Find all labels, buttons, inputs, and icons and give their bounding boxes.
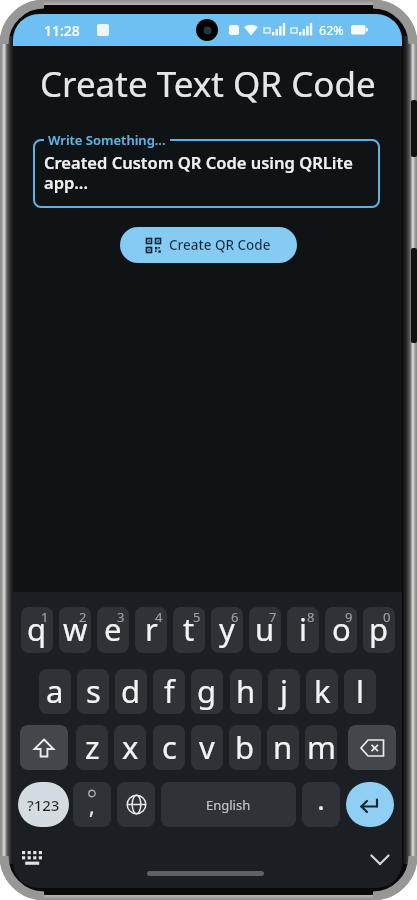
staticText: i [299, 608, 307, 650]
button[interactable]: . [302, 782, 340, 827]
staticText: o [332, 608, 351, 650]
button[interactable]: , [73, 782, 111, 827]
staticText: p [369, 608, 389, 650]
button[interactable] [365, 846, 395, 874]
staticText: u [255, 608, 275, 650]
staticText: 5 [193, 608, 201, 626]
button[interactable]: y [211, 607, 243, 653]
staticText: k [314, 670, 331, 712]
button[interactable]: s [77, 669, 109, 714]
staticText: t [183, 608, 195, 650]
staticText: c [162, 726, 177, 768]
button[interactable] [20, 725, 68, 770]
button[interactable]: k [306, 669, 338, 714]
staticText: v [199, 726, 215, 768]
staticText: 3 [117, 608, 125, 626]
staticText: x [122, 726, 139, 768]
button[interactable] [17, 845, 48, 873]
button[interactable]: ?123 [18, 782, 69, 827]
staticText: q [27, 608, 47, 650]
staticText: Write Something... [48, 131, 166, 149]
staticText: Created Custom QR Code using QRLite [44, 151, 353, 173]
button[interactable]: English [161, 782, 296, 827]
staticText: 1 [41, 608, 49, 626]
staticText: r [145, 608, 158, 650]
button[interactable] [117, 782, 155, 827]
button[interactable]: f [153, 669, 185, 714]
button[interactable]: a [39, 669, 71, 714]
staticText: . [318, 788, 324, 817]
button[interactable]: g [191, 669, 223, 714]
button[interactable] [348, 725, 396, 770]
staticText: g [197, 670, 217, 712]
staticText: n [273, 726, 293, 768]
staticText: 62% [319, 22, 344, 39]
staticText: Create Text QR Code [40, 60, 376, 108]
button[interactable]: m [305, 725, 337, 770]
staticText: d [121, 670, 141, 712]
staticText: s [86, 670, 101, 712]
button[interactable]: x [114, 725, 146, 770]
staticText: f [164, 670, 175, 712]
staticText: Create QR Code [169, 236, 271, 254]
staticText: app... [44, 171, 88, 193]
button[interactable]: p [363, 607, 395, 653]
staticText: , [89, 792, 95, 821]
staticText: 4 [155, 608, 163, 626]
staticText: English [206, 796, 251, 814]
staticText: 0 [383, 608, 391, 626]
staticText: z [85, 726, 100, 768]
staticText: b [235, 726, 255, 768]
button[interactable]: i [287, 607, 319, 653]
button[interactable]: h [230, 669, 262, 714]
button[interactable]: z [76, 725, 108, 770]
button[interactable]: w [59, 607, 91, 653]
button[interactable]: c [153, 725, 185, 770]
button[interactable]: v [191, 725, 223, 770]
staticText: 8 [307, 608, 315, 626]
button[interactable]: t [173, 607, 205, 653]
button[interactable]: r [135, 607, 167, 653]
button[interactable]: l [344, 669, 376, 714]
button[interactable]: j [268, 669, 300, 714]
staticText: h [236, 670, 256, 712]
button[interactable]: n [267, 725, 299, 770]
staticText: a [46, 670, 64, 712]
button[interactable] [33, 139, 380, 208]
staticText: j [280, 670, 288, 712]
staticText: 6 [231, 608, 239, 626]
staticText: m [307, 726, 336, 768]
staticText: ?123 [27, 795, 60, 815]
staticText: 2 [79, 608, 87, 626]
button[interactable] [346, 782, 394, 827]
staticText: 7 [269, 608, 277, 626]
staticText: e [104, 608, 122, 650]
button[interactable]: o [325, 607, 357, 653]
button[interactable]: u [249, 607, 281, 653]
button[interactable]: b [229, 725, 261, 770]
button[interactable]: q [21, 607, 53, 653]
staticText: y [219, 608, 235, 650]
button[interactable]: Create QR Code [120, 227, 297, 263]
staticText: w [63, 608, 88, 650]
staticText: l [356, 670, 364, 712]
button[interactable]: d [115, 669, 147, 714]
staticText: 11:28 [44, 21, 80, 40]
staticText: 9 [345, 608, 353, 626]
button[interactable]: e [97, 607, 129, 653]
